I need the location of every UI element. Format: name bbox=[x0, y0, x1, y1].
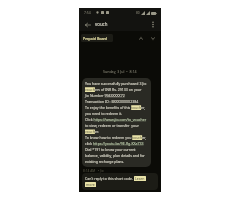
button[interactable]: You have successfully purchased 3 Jio bbox=[82, 78, 151, 167]
button[interactable]: Prepaid Board bbox=[81, 34, 113, 42]
staticText: • Jio bbox=[98, 169, 104, 173]
staticText: Click https://www.jio.com/to_voucher bbox=[85, 117, 147, 122]
button[interactable]: Previous result bbox=[137, 34, 145, 42]
button[interactable]: Next result bbox=[149, 34, 157, 42]
staticText: 8:14 AM bbox=[83, 169, 96, 173]
staticText: to view, redeem or transfer your bbox=[85, 123, 139, 128]
staticText: Dial *191 to know your current bbox=[85, 147, 136, 152]
staticText: Can't reply to this short code. bbox=[85, 176, 134, 181]
button[interactable]: vouch bbox=[95, 18, 148, 30]
staticText: more bbox=[86, 182, 95, 187]
staticText: Transaction ID : BXXXXXXXX2384 bbox=[85, 99, 139, 104]
staticText: 80 bbox=[136, 11, 140, 15]
staticText: existing recharge plans. bbox=[85, 159, 125, 164]
staticText: you need to redeem it. bbox=[85, 111, 123, 116]
staticText: Sunday, 3 Jul • 8:14 bbox=[103, 69, 137, 74]
staticText: To know how to redeem you voucher, bbox=[85, 135, 146, 140]
staticText: voucher. bbox=[85, 129, 99, 134]
button[interactable]: Can't reply to this short code. bbox=[82, 173, 158, 190]
staticText: vouchers of INR Rs. 29133 on your bbox=[85, 87, 142, 92]
staticText: click https://youtu.be/9E-Rg-KXa733 bbox=[85, 141, 144, 146]
staticText: You have successfully purchased 3 Jio bbox=[85, 81, 147, 86]
staticText: Jio Number 9943XXXX72 bbox=[85, 93, 125, 98]
staticText: Learn bbox=[135, 176, 145, 181]
staticText: Prepaid Board bbox=[83, 36, 108, 41]
staticText: To enjoy the benefits of this voucher, bbox=[85, 105, 145, 110]
staticText: 7:54 bbox=[84, 10, 91, 15]
button[interactable]: More options bbox=[148, 20, 157, 29]
staticText: balance, validity, plan details and for bbox=[85, 153, 145, 158]
staticText: vouch bbox=[95, 21, 108, 27]
button[interactable]: Back bbox=[83, 20, 92, 29]
